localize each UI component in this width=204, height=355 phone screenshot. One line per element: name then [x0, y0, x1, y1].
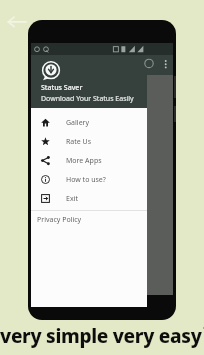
staticText: Privacy Policy — [37, 215, 82, 225]
button[interactable]: How to use? — [31, 170, 147, 189]
button[interactable]: More Apps — [31, 151, 147, 170]
staticText: Exit — [66, 194, 78, 204]
staticText: Rate Us — [66, 137, 92, 147]
staticText: More Apps — [66, 156, 102, 166]
button[interactable]: Back — [5, 8, 29, 32]
staticText: Download Your Status Easily — [41, 94, 134, 104]
button[interactable]: Privacy Policy — [31, 211, 147, 229]
staticText: Gallery — [66, 118, 90, 128]
staticText: very simple very easy — [0, 323, 202, 349]
staticText: Status Saver — [41, 83, 83, 93]
button[interactable]: Rate Us — [31, 132, 147, 151]
staticText: How to use? — [66, 175, 106, 185]
button[interactable]: Gallery — [31, 113, 147, 132]
button[interactable]: Exit — [31, 189, 147, 208]
